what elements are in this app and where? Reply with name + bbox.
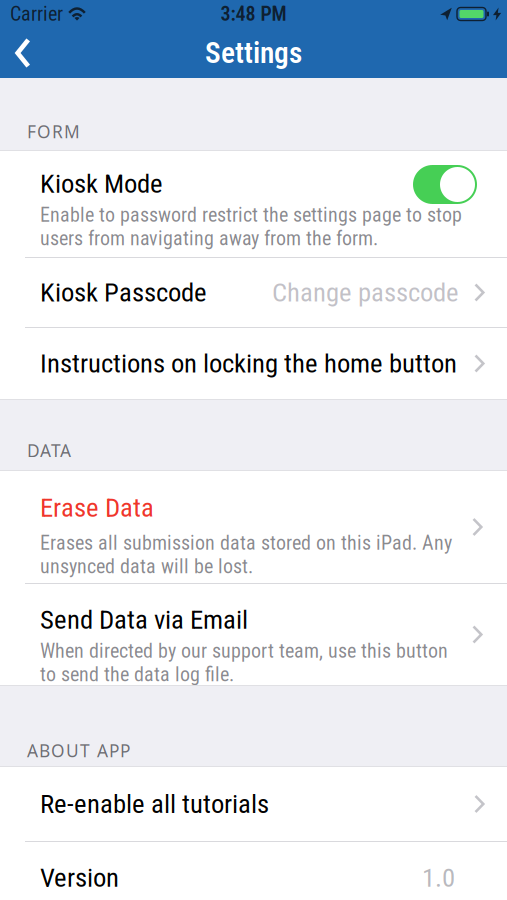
staticText: FORM (27, 120, 80, 143)
staticText: Change passcode (272, 277, 459, 308)
staticText: Kiosk Mode (40, 168, 163, 199)
button[interactable]: Back (0, 28, 45, 78)
staticText: Version (40, 862, 119, 893)
staticText: Enable to password restrict the settings… (40, 203, 462, 227)
staticText: Settings (205, 36, 302, 70)
button[interactable]: Kiosk Passcode (0, 258, 507, 327)
staticText: Send Data via Email (40, 604, 248, 635)
staticText: Carrier (10, 2, 63, 26)
button[interactable]: Kiosk Mode (413, 165, 477, 204)
staticText: 3:48 PM (220, 2, 286, 26)
button[interactable]: Erase Data (0, 471, 507, 583)
staticText: Erase Data (40, 492, 154, 523)
staticText: 1.0 (422, 862, 455, 893)
staticText: users from navigating away from the form… (40, 227, 378, 250)
staticText: Instructions on locking the home button (40, 348, 457, 379)
staticText: unsynced data will be lost. (40, 555, 253, 578)
staticText: Kiosk Passcode (40, 277, 207, 308)
button[interactable]: Instructions on locking the home button (0, 328, 507, 399)
staticText: Erases all submission data stored on thi… (40, 531, 452, 555)
staticText: to send the data log file. (40, 663, 234, 686)
staticText: Re-enable all tutorials (40, 788, 269, 820)
button[interactable]: Send Data via Email (0, 584, 507, 685)
staticText: When directed by our support team, use t… (40, 639, 448, 663)
button[interactable]: Re-enable all tutorials (0, 767, 507, 841)
staticText: DATA (27, 439, 71, 462)
staticText: ABOUT APP (27, 739, 130, 762)
